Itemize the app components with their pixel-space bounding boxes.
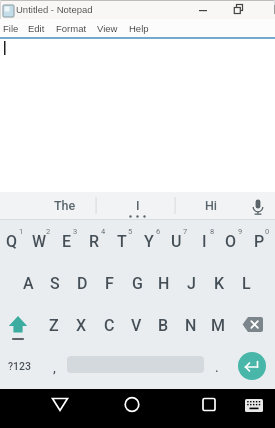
button[interactable]: L (231, 271, 261, 295)
staticText: 2 (46, 227, 51, 236)
staticText: F (105, 274, 114, 293)
staticText: Q (6, 232, 18, 251)
staticText: Help (129, 23, 149, 34)
button[interactable]: ?123 (5, 354, 35, 378)
staticText: N (185, 316, 197, 335)
button[interactable]: Format (56, 19, 87, 37)
button[interactable]: Untitled - Notepad (16, 0, 136, 19)
button[interactable]: Hi (196, 193, 226, 217)
staticText: U (171, 232, 182, 251)
staticText: Hi (205, 198, 218, 213)
staticText: 5 (128, 227, 133, 236)
staticText: H (158, 274, 170, 293)
button[interactable]: . (202, 355, 232, 379)
staticText: M (211, 316, 225, 335)
staticText: G (132, 274, 143, 293)
staticText: Format (56, 23, 87, 34)
button[interactable]: I (189, 229, 219, 253)
staticText: S (50, 274, 60, 293)
staticText: Untitled - Notepad (16, 4, 93, 15)
button[interactable]: H (149, 271, 179, 295)
staticText: E (62, 232, 72, 251)
staticText: X (76, 316, 87, 335)
button[interactable] (40, 389, 80, 428)
button[interactable]: C (94, 313, 124, 337)
button[interactable] (238, 306, 272, 344)
staticText: . (215, 360, 219, 375)
staticText: W (32, 232, 47, 251)
staticText: File (3, 23, 19, 34)
button[interactable] (112, 389, 152, 428)
button[interactable]: The (50, 193, 80, 217)
button[interactable]: U (161, 229, 191, 253)
staticText: 4 (101, 227, 106, 236)
staticText: 0 (265, 227, 270, 236)
staticText: Y (144, 232, 154, 251)
staticText: 3 (73, 227, 78, 236)
button[interactable]: K (204, 271, 234, 295)
button[interactable]: Edit (28, 19, 45, 37)
button[interactable]: A (13, 271, 43, 295)
button[interactable]: B (148, 313, 178, 337)
button[interactable]: I (123, 193, 153, 217)
button[interactable]: V (121, 313, 151, 337)
button[interactable]: Y (134, 229, 164, 253)
staticText: 9 (238, 227, 243, 236)
button[interactable]: S (40, 271, 70, 295)
button[interactable] (238, 352, 266, 380)
staticText: O (225, 232, 237, 251)
staticText: T (117, 232, 127, 251)
staticText: , (53, 360, 56, 375)
button[interactable]: N (176, 313, 206, 337)
button[interactable]: File (3, 19, 19, 37)
staticText: View (97, 23, 118, 34)
staticText: B (158, 316, 169, 335)
staticText: 1 (19, 227, 24, 236)
button[interactable]: X (66, 313, 96, 337)
button[interactable] (189, 389, 229, 428)
button[interactable] (244, 192, 274, 219)
staticText: Z (49, 316, 59, 335)
staticText: A (23, 274, 34, 293)
button[interactable]: G (122, 271, 152, 295)
staticText: ?123 (8, 360, 32, 372)
button[interactable]: J (176, 271, 206, 295)
button[interactable] (235, 389, 273, 428)
button[interactable]: W (24, 229, 54, 253)
staticText: The (54, 198, 76, 213)
staticText: J (187, 274, 196, 293)
staticText: I (136, 198, 140, 213)
button[interactable]: Z (39, 313, 69, 337)
staticText: Edit (28, 23, 45, 34)
staticText: 6 (156, 227, 161, 236)
button[interactable]: E (52, 229, 82, 253)
button[interactable]: P (244, 229, 274, 253)
button[interactable]: R (79, 229, 109, 253)
staticText: K (214, 274, 225, 293)
staticText: R (89, 232, 100, 251)
button[interactable] (2, 306, 36, 344)
button[interactable]: F (94, 271, 124, 295)
staticText: I (202, 232, 207, 251)
button[interactable]: Q (0, 229, 27, 253)
staticText: V (131, 316, 142, 335)
staticText: 8 (210, 227, 215, 236)
staticText: P (254, 232, 265, 251)
staticText: D (77, 274, 88, 293)
button[interactable]: T (107, 229, 137, 253)
button[interactable]: Help (129, 19, 149, 37)
button[interactable]: , (39, 355, 69, 379)
button[interactable]: View (97, 19, 118, 37)
button[interactable]: M (203, 313, 233, 337)
button[interactable]: D (67, 271, 97, 295)
staticText: L (242, 274, 251, 293)
staticText: 7 (183, 227, 188, 236)
staticText: C (104, 316, 115, 335)
button[interactable]: O (216, 229, 246, 253)
